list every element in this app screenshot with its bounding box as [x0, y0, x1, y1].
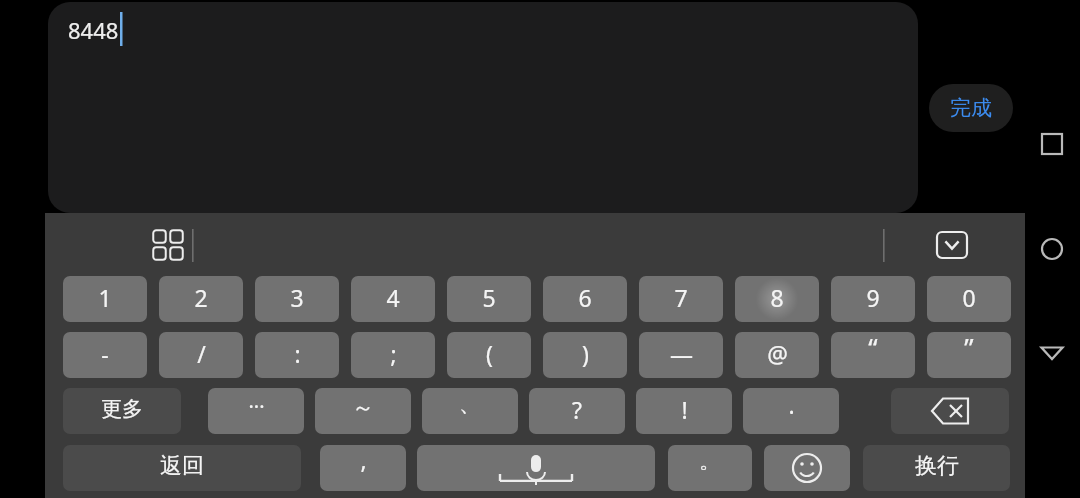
button[interactable]: 更多 — [63, 388, 181, 434]
button[interactable]: ” — [927, 332, 1011, 378]
staticText: ; — [390, 338, 397, 369]
staticText: - — [101, 338, 109, 369]
button[interactable]: ( — [447, 332, 531, 378]
staticText: / — [197, 338, 206, 369]
staticText: 4 — [386, 282, 400, 313]
button[interactable]: — — [639, 332, 723, 378]
staticText: 8448 — [68, 15, 119, 45]
button[interactable]: 1 — [63, 276, 147, 322]
button[interactable]: ; — [351, 332, 435, 378]
staticText: 。 — [699, 447, 721, 475]
button[interactable]: Hide keyboard — [931, 225, 973, 265]
button[interactable]: Keyboard layouts — [148, 225, 188, 265]
button[interactable]: “ — [831, 332, 915, 378]
staticText: ··· — [248, 393, 265, 420]
button[interactable]: ! — [636, 388, 732, 434]
button[interactable]: ? — [529, 388, 625, 434]
button[interactable]: 7 — [639, 276, 723, 322]
button[interactable]: 2 — [159, 276, 243, 322]
button[interactable]: . — [743, 388, 839, 434]
staticText: . — [788, 389, 795, 420]
staticText: 返回 — [160, 452, 204, 480]
button[interactable]: 8448 — [48, 2, 918, 213]
button[interactable]: Voice input, space — [417, 445, 655, 491]
staticText: 2 — [194, 282, 208, 313]
button[interactable]: 9 — [831, 276, 915, 322]
button[interactable]: Recents — [1036, 128, 1068, 160]
staticText: — — [670, 338, 693, 369]
staticText: 5 — [482, 282, 496, 313]
staticText: : — [294, 338, 301, 369]
button[interactable]: Backspace — [891, 388, 1009, 434]
staticText: ” — [964, 332, 974, 364]
button[interactable]: : — [255, 332, 339, 378]
staticText: ? — [572, 394, 582, 425]
staticText: 、 — [459, 390, 481, 418]
button[interactable]: ) — [543, 332, 627, 378]
staticText: 换行 — [915, 452, 959, 480]
button[interactable]: 4 — [351, 276, 435, 322]
button[interactable]: Home — [1036, 233, 1068, 265]
button[interactable]: ～ — [315, 388, 411, 434]
staticText: 7 — [674, 282, 688, 313]
button[interactable]: 8 — [735, 276, 819, 322]
button[interactable]: @ — [735, 332, 819, 378]
button[interactable]: ··· — [208, 388, 304, 434]
staticText: ) — [582, 338, 589, 369]
button[interactable]: 、 — [422, 388, 518, 434]
button[interactable]: / — [159, 332, 243, 378]
staticText: ! — [681, 394, 688, 425]
button[interactable]: 换行 — [863, 445, 1010, 491]
staticText: 完成 — [950, 95, 992, 121]
staticText: 更多 — [101, 396, 143, 422]
button[interactable]: Back — [1036, 336, 1068, 368]
staticText: 0 — [962, 282, 976, 313]
staticText: 1 — [98, 282, 112, 313]
button[interactable]: 返回 — [63, 445, 301, 491]
staticText: 8 — [770, 282, 784, 313]
button[interactable]: 0 — [927, 276, 1011, 322]
button[interactable]: 6 — [543, 276, 627, 322]
staticText: @ — [767, 338, 788, 369]
button[interactable]: 。 — [668, 445, 752, 491]
staticText: “ — [868, 332, 878, 364]
staticText: 9 — [866, 282, 880, 313]
staticText: 6 — [578, 282, 592, 313]
button[interactable]: 5 — [447, 276, 531, 322]
button[interactable]: Emoji — [764, 445, 850, 491]
button[interactable]: 完成 — [929, 84, 1013, 132]
button[interactable]: - — [63, 332, 147, 378]
staticText: ～ — [352, 394, 374, 422]
button[interactable]: 3 — [255, 276, 339, 322]
staticText: 3 — [290, 282, 304, 313]
staticText: ( — [486, 338, 493, 369]
staticText: , — [360, 445, 367, 475]
button[interactable]: , — [320, 445, 406, 491]
